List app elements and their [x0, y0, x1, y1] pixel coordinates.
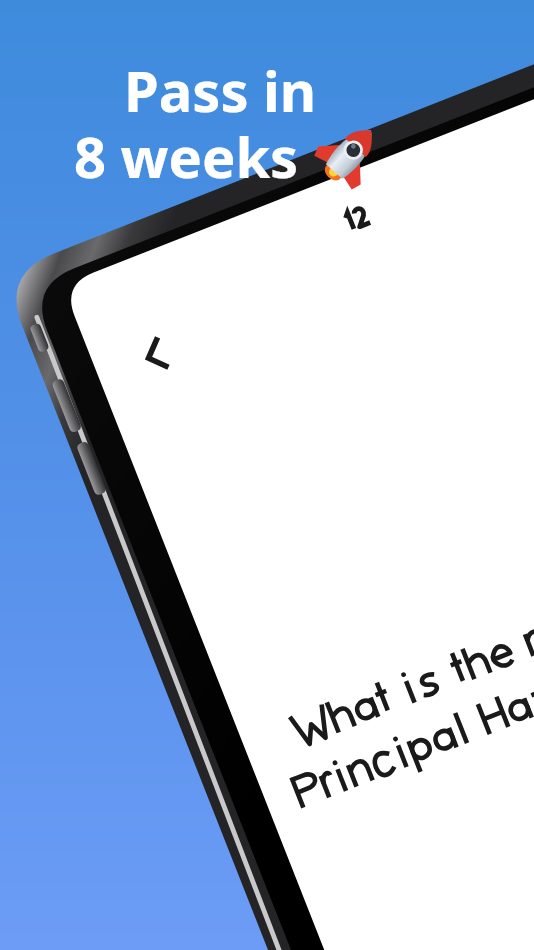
staticText: Pass in: [124, 52, 317, 128]
button[interactable]: App preview on phone: [0, 0, 534, 950]
staticText: 8 weeks: [74, 118, 299, 194]
